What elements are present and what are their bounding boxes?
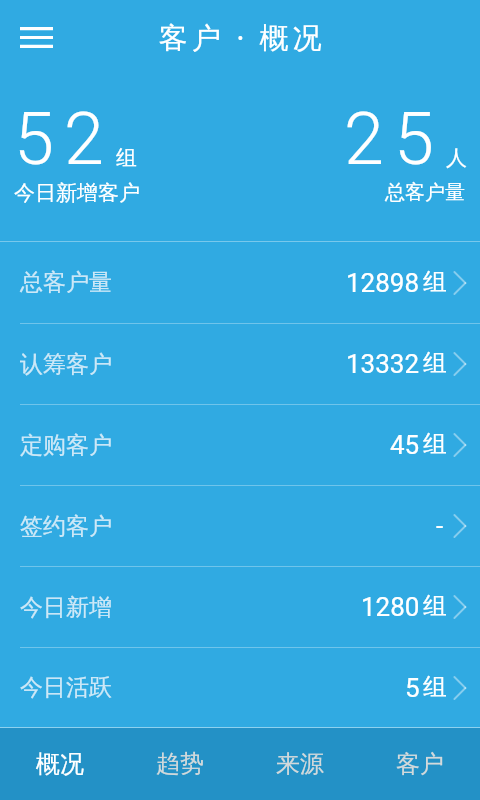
staticText: 组 <box>116 145 137 171</box>
button[interactable]: 来源 <box>240 728 360 800</box>
staticText: 1280 <box>361 592 420 622</box>
button[interactable]: Open navigation menu <box>8 10 64 66</box>
staticText: 组 <box>423 672 447 702</box>
staticText: 12898 <box>346 268 420 298</box>
staticText: - <box>436 511 444 541</box>
button[interactable]: 认筹客户 <box>0 324 480 404</box>
staticText: 来源 <box>276 749 324 779</box>
staticText: 5 <box>405 673 420 703</box>
staticText: 概况 <box>36 749 84 779</box>
staticText: 今日新增客户 <box>14 180 140 206</box>
staticText: 趋势 <box>156 749 204 779</box>
staticText: 组 <box>423 267 447 297</box>
staticText: 25 <box>344 97 444 181</box>
staticText: 总客户量 <box>20 268 112 297</box>
button[interactable]: 趋势 <box>120 728 240 800</box>
staticText: 认筹客户 <box>20 350 112 379</box>
staticText: 组 <box>423 591 447 621</box>
staticText: 客户 <box>396 749 444 779</box>
staticText: 13332 <box>346 349 420 379</box>
button[interactable]: 定购客户 <box>0 405 480 485</box>
staticText: 组 <box>423 348 447 378</box>
staticText: 客户 · 概况 <box>159 17 326 57</box>
staticText: 45 <box>390 430 420 460</box>
button[interactable]: 总客户量 <box>0 242 480 323</box>
staticText: 组 <box>423 429 447 459</box>
staticText: 52 <box>14 97 114 181</box>
staticText: 定购客户 <box>20 431 112 460</box>
staticText: 人 <box>446 145 467 171</box>
button[interactable]: 客户 <box>360 728 480 800</box>
staticText: 今日新增 <box>20 593 112 622</box>
staticText: 总客户量 <box>385 180 465 205</box>
button[interactable]: 今日新增 <box>0 567 480 647</box>
button[interactable]: 签约客户 <box>0 486 480 566</box>
button[interactable]: 今日活跃 <box>0 648 480 727</box>
staticText: 今日活跃 <box>20 673 112 702</box>
staticText: 签约客户 <box>20 512 112 541</box>
button[interactable]: 概况 <box>0 728 120 800</box>
